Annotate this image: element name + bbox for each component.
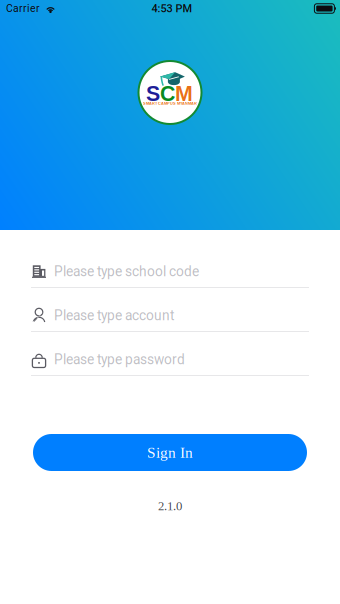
button[interactable]: Please type password xyxy=(0,344,340,376)
button[interactable]: Please type school code xyxy=(0,256,340,288)
staticText: Please type school code xyxy=(54,263,199,280)
staticText: Please type account xyxy=(54,307,174,324)
staticText: S xyxy=(146,82,160,105)
staticText: Carrier xyxy=(6,2,40,15)
staticText: 4:53 PM xyxy=(151,2,192,15)
staticText: Sign In xyxy=(147,444,193,461)
button[interactable]: Please type account xyxy=(0,300,340,332)
staticText: SMART CAMPUS MYANMAR xyxy=(143,101,197,106)
button[interactable]: Sign In xyxy=(33,434,307,471)
staticText: 2.1.0 xyxy=(158,499,182,513)
staticText: Please type password xyxy=(54,351,185,368)
staticText: C xyxy=(160,82,175,105)
staticText: M xyxy=(175,82,193,105)
